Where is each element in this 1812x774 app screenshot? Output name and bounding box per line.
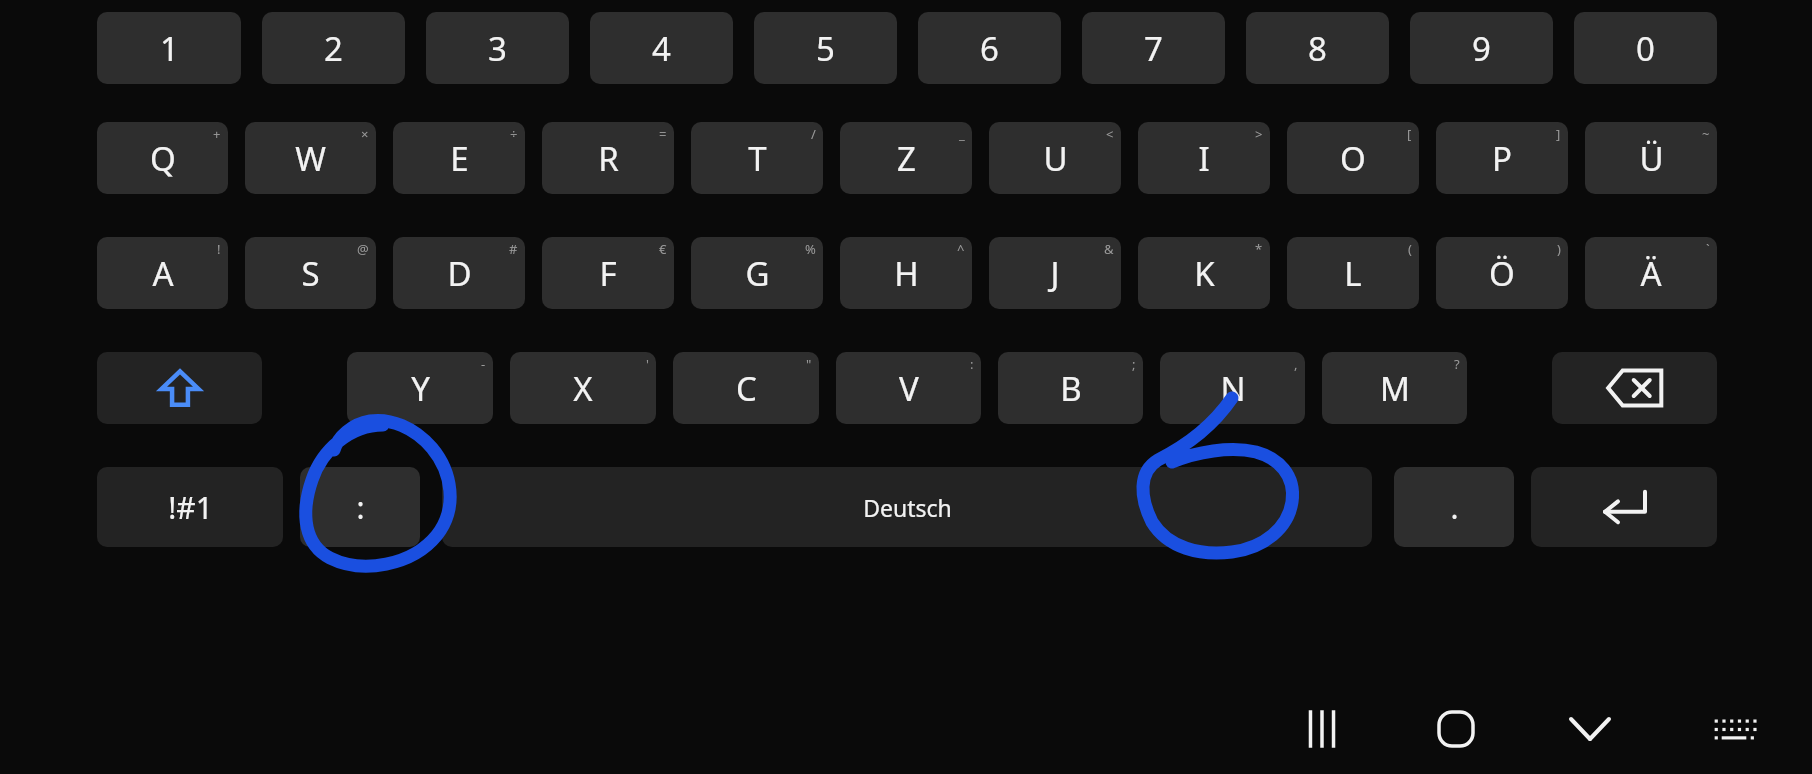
- staticText: ^: [957, 240, 965, 258]
- button[interactable]: Ü: [1585, 122, 1717, 194]
- staticText: <: [1106, 125, 1114, 143]
- button[interactable]: H: [840, 237, 972, 309]
- button[interactable]: Recent apps: [1274, 684, 1370, 774]
- button[interactable]: Z: [840, 122, 972, 194]
- staticText: A: [152, 251, 174, 296]
- staticText: 1: [160, 26, 179, 71]
- staticText: ': [646, 355, 649, 373]
- staticText: P: [1492, 136, 1512, 181]
- staticText: L: [1344, 251, 1362, 296]
- button[interactable]: 5: [754, 12, 897, 84]
- button[interactable]: !#1: [97, 467, 283, 547]
- staticText: /: [811, 125, 816, 143]
- button[interactable]: Shift: [97, 352, 262, 424]
- button[interactable]: 3: [426, 12, 569, 84]
- button[interactable]: 8: [1246, 12, 1389, 84]
- button[interactable]: C: [673, 352, 819, 424]
- staticText: 6: [980, 26, 999, 71]
- button[interactable]: O: [1287, 122, 1419, 194]
- staticText: *: [1255, 240, 1263, 258]
- staticText: -: [481, 355, 486, 373]
- staticText: 8: [1308, 26, 1327, 71]
- staticText: ": [806, 355, 812, 373]
- staticText: C: [736, 366, 757, 411]
- button[interactable]: J: [989, 237, 1121, 309]
- staticText: Z: [897, 136, 916, 181]
- button[interactable]: R: [542, 122, 674, 194]
- button[interactable]: K: [1138, 237, 1270, 309]
- staticText: :: [970, 355, 974, 373]
- button[interactable]: 6: [918, 12, 1061, 84]
- button[interactable]: Backspace: [1552, 352, 1717, 424]
- button[interactable]: 4: [590, 12, 733, 84]
- staticText: F: [599, 251, 617, 296]
- staticText: [: [1407, 125, 1412, 143]
- button[interactable]: I: [1138, 122, 1270, 194]
- staticText: ?: [1454, 355, 1460, 373]
- staticText: 9: [1472, 26, 1491, 71]
- staticText: `: [1706, 240, 1710, 258]
- button[interactable]: Y: [347, 352, 493, 424]
- button[interactable]: X: [510, 352, 656, 424]
- staticText: +: [213, 125, 221, 143]
- button[interactable]: W: [245, 122, 376, 194]
- button[interactable]: 1: [97, 12, 241, 84]
- button[interactable]: V: [836, 352, 981, 424]
- staticText: K: [1194, 251, 1215, 296]
- staticText: E: [450, 136, 469, 181]
- staticText: >: [1255, 125, 1263, 143]
- staticText: %: [805, 240, 816, 258]
- button[interactable]: U: [989, 122, 1121, 194]
- button[interactable]: Change keyboard: [1686, 684, 1782, 774]
- button[interactable]: 7: [1082, 12, 1225, 84]
- staticText: 0: [1636, 26, 1655, 71]
- button[interactable]: S: [245, 237, 376, 309]
- staticText: 7: [1144, 26, 1163, 71]
- staticText: D: [447, 251, 472, 296]
- button[interactable]: A: [97, 237, 228, 309]
- staticText: G: [745, 251, 770, 296]
- staticText: !#1: [168, 487, 213, 528]
- button[interactable]: F: [542, 237, 674, 309]
- staticText: W: [295, 136, 326, 181]
- button[interactable]: Enter: [1531, 467, 1717, 547]
- staticText: Q: [150, 136, 176, 181]
- button[interactable]: 0: [1574, 12, 1717, 84]
- staticText: N: [1220, 366, 1246, 411]
- button[interactable]: 2: [262, 12, 405, 84]
- button[interactable]: E: [393, 122, 525, 194]
- button[interactable]: Hide keyboard: [1542, 684, 1638, 774]
- button[interactable]: B: [998, 352, 1143, 424]
- button[interactable]: M: [1322, 352, 1467, 424]
- staticText: H: [894, 251, 919, 296]
- staticText: :: [356, 487, 365, 528]
- button[interactable]: D: [393, 237, 525, 309]
- staticText: _: [959, 125, 965, 143]
- button[interactable]: T: [691, 122, 823, 194]
- staticText: X: [573, 366, 593, 411]
- button[interactable]: Q: [97, 122, 228, 194]
- button[interactable]: 9: [1410, 12, 1553, 84]
- button[interactable]: P: [1436, 122, 1568, 194]
- staticText: T: [748, 136, 767, 181]
- button[interactable]: N: [1160, 352, 1305, 424]
- button[interactable]: Deutsch: [442, 467, 1372, 547]
- button[interactable]: .: [1394, 467, 1514, 547]
- staticText: .: [1450, 487, 1459, 528]
- button[interactable]: Home: [1408, 684, 1504, 774]
- staticText: Ö: [1489, 251, 1515, 296]
- button[interactable]: L: [1287, 237, 1419, 309]
- button[interactable]: Ö: [1436, 237, 1568, 309]
- staticText: =: [659, 125, 667, 143]
- staticText: ÷: [510, 125, 518, 143]
- button[interactable]: G: [691, 237, 823, 309]
- staticText: Y: [411, 366, 430, 411]
- staticText: ): [1557, 240, 1561, 258]
- staticText: !: [217, 240, 221, 258]
- staticText: &: [1104, 240, 1114, 258]
- staticText: Deutsch: [863, 492, 952, 523]
- button[interactable]: :: [300, 467, 420, 547]
- staticText: (: [1408, 240, 1412, 258]
- button[interactable]: Ä: [1585, 237, 1717, 309]
- staticText: B: [1060, 366, 1082, 411]
